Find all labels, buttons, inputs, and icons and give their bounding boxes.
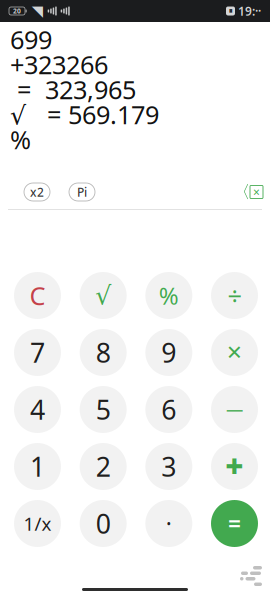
staticText: 8 bbox=[96, 335, 111, 370]
button[interactable]: Backspace bbox=[232, 182, 264, 202]
staticText: 4 bbox=[30, 392, 45, 427]
staticText: ✚ bbox=[225, 454, 243, 479]
staticText: 19:·· bbox=[238, 3, 261, 19]
button[interactable]: 1 bbox=[14, 443, 61, 490]
button[interactable]: 7 bbox=[14, 329, 61, 376]
staticText: = bbox=[228, 508, 241, 538]
staticText: % bbox=[10, 123, 31, 156]
staticText: +323266 bbox=[10, 48, 108, 81]
button[interactable]: 2 bbox=[80, 443, 127, 490]
staticText: 9 bbox=[161, 335, 176, 370]
button[interactable]: C bbox=[14, 272, 61, 319]
staticText: 1/x bbox=[23, 511, 51, 536]
staticText: C bbox=[29, 279, 45, 312]
staticText: x2 bbox=[30, 184, 44, 200]
staticText: Pi bbox=[77, 184, 87, 200]
staticText: √ = 569.179 bbox=[10, 98, 159, 131]
button[interactable]: ✚ bbox=[211, 443, 258, 490]
staticText: % bbox=[159, 280, 179, 311]
staticText: · bbox=[166, 508, 172, 538]
button[interactable]: 1/x bbox=[14, 500, 61, 547]
staticText: 2 bbox=[96, 449, 111, 484]
staticText: ✕ bbox=[226, 341, 243, 364]
button[interactable]: x2 bbox=[24, 183, 50, 201]
staticText: = 323,965 bbox=[10, 73, 136, 106]
button[interactable]: 3 bbox=[145, 443, 192, 490]
staticText: 699 bbox=[10, 23, 52, 56]
staticText: √ bbox=[95, 281, 111, 310]
staticText: 〈 bbox=[233, 181, 250, 203]
button[interactable]: — bbox=[211, 386, 258, 433]
button[interactable]: = bbox=[211, 500, 258, 547]
staticText: 5 bbox=[96, 392, 111, 427]
staticText: 1 bbox=[30, 449, 45, 484]
staticText: ÷ bbox=[227, 279, 241, 312]
button[interactable]: 0 bbox=[80, 500, 127, 547]
button[interactable]: · bbox=[145, 500, 192, 547]
button[interactable]: 8 bbox=[80, 329, 127, 376]
staticText: 3 bbox=[161, 449, 176, 484]
button[interactable]: 4 bbox=[14, 386, 61, 433]
button[interactable]: 9 bbox=[145, 329, 192, 376]
staticText: 20 bbox=[13, 7, 21, 15]
button[interactable]: √ bbox=[80, 272, 127, 319]
button[interactable]: ✕ bbox=[211, 329, 258, 376]
staticText: ⏸ bbox=[228, 7, 232, 15]
staticText: 6 bbox=[161, 392, 176, 427]
staticText: 7 bbox=[30, 335, 45, 370]
button[interactable]: % bbox=[145, 272, 192, 319]
staticText: × bbox=[253, 184, 260, 200]
button[interactable]: ÷ bbox=[211, 272, 258, 319]
staticText: ◥ bbox=[32, 3, 43, 19]
staticText: 0 bbox=[96, 506, 111, 541]
button[interactable]: 6 bbox=[145, 386, 192, 433]
staticText: — bbox=[226, 398, 243, 421]
button[interactable]: 5 bbox=[80, 386, 127, 433]
button[interactable]: Pi bbox=[69, 183, 95, 201]
